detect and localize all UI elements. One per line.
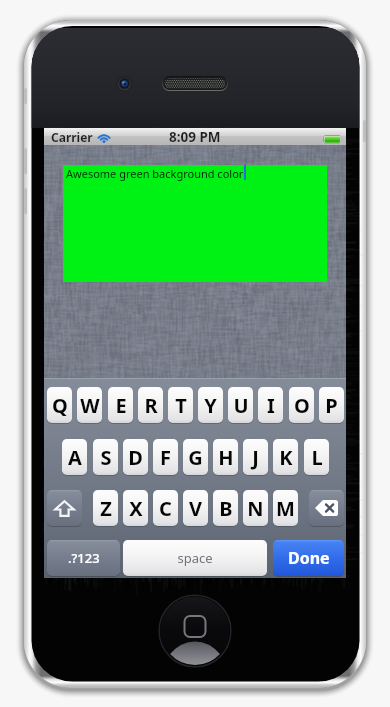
staticText: M: [276, 495, 295, 522]
staticText: K: [279, 444, 293, 471]
button[interactable]: C: [153, 490, 178, 526]
staticText: Awesome green background color: [66, 166, 244, 181]
button[interactable]: Awesome green background color: [63, 165, 327, 282]
staticText: X: [129, 495, 143, 522]
staticText: C: [159, 495, 172, 522]
button[interactable]: M: [273, 490, 298, 526]
staticText: Carrier: [51, 129, 93, 145]
button[interactable]: A: [62, 439, 87, 475]
button[interactable]: B: [213, 490, 238, 526]
staticText: J: [252, 444, 259, 471]
staticText: D: [128, 444, 143, 471]
button[interactable]: Z: [93, 490, 118, 526]
button[interactable]: V: [183, 490, 208, 526]
button[interactable]: Backspace: [309, 490, 344, 526]
button[interactable]: K: [273, 439, 298, 475]
button[interactable]: J: [243, 439, 268, 475]
staticText: F: [160, 444, 171, 471]
button[interactable]: E: [108, 387, 133, 423]
staticText: O: [294, 392, 310, 419]
staticText: E: [115, 392, 127, 419]
staticText: T: [175, 392, 187, 419]
button[interactable]: Done: [273, 540, 344, 576]
staticText: R: [144, 392, 158, 419]
button[interactable]: W: [77, 387, 102, 423]
button[interactable]: O: [289, 387, 314, 423]
staticText: .?123: [68, 549, 100, 567]
button[interactable]: G: [183, 439, 208, 475]
staticText: V: [189, 495, 202, 522]
button[interactable]: H: [213, 439, 238, 475]
staticText: G: [188, 444, 203, 471]
button[interactable]: Y: [198, 387, 223, 423]
button[interactable]: I: [258, 387, 283, 423]
staticText: U: [233, 392, 249, 419]
staticText: W: [80, 392, 100, 419]
button[interactable]: L: [304, 439, 329, 475]
staticText: P: [325, 392, 338, 419]
staticText: I: [267, 392, 275, 419]
staticText: A: [68, 444, 82, 471]
button[interactable]: R: [138, 387, 163, 423]
staticText: Q: [52, 392, 68, 419]
staticText: Y: [204, 392, 217, 419]
staticText: L: [311, 444, 323, 471]
button[interactable]: D: [123, 439, 148, 475]
button[interactable]: F: [153, 439, 178, 475]
button[interactable]: Q: [47, 387, 72, 423]
staticText: 8:09 PM: [169, 128, 221, 145]
button[interactable]: T: [168, 387, 193, 423]
button[interactable]: .?123: [47, 540, 120, 576]
button[interactable]: U: [228, 387, 253, 423]
button[interactable]: X: [123, 490, 148, 526]
staticText: H: [218, 444, 234, 471]
staticText: Done: [288, 547, 330, 569]
staticText: B: [219, 495, 233, 522]
staticText: space: [177, 549, 213, 567]
staticText: Z: [100, 495, 112, 522]
staticText: N: [247, 495, 264, 522]
button[interactable]: Shift: [47, 490, 82, 526]
button[interactable]: P: [319, 387, 344, 423]
button[interactable]: space: [123, 540, 267, 576]
button[interactable]: S: [93, 439, 118, 475]
staticText: S: [100, 444, 112, 471]
button[interactable]: N: [243, 490, 268, 526]
